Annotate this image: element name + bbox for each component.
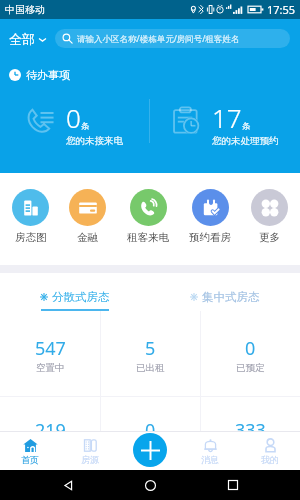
button[interactable]: 0 (0, 96, 149, 146)
staticText: 547 (35, 336, 66, 361)
staticText: 房态图 (15, 231, 47, 244)
staticText: 房源 (81, 454, 99, 465)
staticText: 已预定 (236, 362, 265, 374)
staticText: 空置中 (36, 362, 65, 374)
button[interactable]: 547 (0, 311, 100, 396)
staticText: 中国移动 (5, 3, 45, 16)
button[interactable]: 房源 (60, 432, 120, 470)
staticText: 已到期 (136, 444, 165, 456)
button[interactable]: Back (53, 470, 83, 500)
staticText: 已出租 (136, 362, 165, 374)
button[interactable]: 5 (101, 311, 200, 396)
staticText: 17:55 (267, 2, 296, 17)
button[interactable]: 我的 (240, 432, 300, 470)
staticText: 金融 (77, 231, 98, 244)
staticText: 首页 (21, 454, 39, 465)
button[interactable]: 0 (101, 397, 200, 475)
button[interactable]: 17 (150, 96, 300, 146)
staticText: 219 (35, 418, 66, 443)
staticText: 集中式房态 (202, 290, 260, 304)
staticText: 您的未接来电 (66, 135, 123, 146)
staticText: 请输入小区名称/楼栋单元/房间号/租客姓名 (77, 33, 240, 45)
staticText: 全部 (9, 31, 35, 47)
staticText: 您的未处理预约 (212, 135, 279, 146)
staticText: 17 (212, 100, 242, 135)
staticText: 预约看房 (189, 231, 231, 244)
button[interactable]: Home (135, 470, 165, 500)
staticText: 0 (145, 418, 156, 443)
button[interactable]: 更多 (251, 173, 288, 265)
staticText: 0 (66, 100, 81, 135)
staticText: 条 (242, 121, 251, 132)
button[interactable]: Add (133, 433, 167, 467)
button[interactable]: 全部 (7, 31, 49, 47)
staticText: 待出租 (36, 444, 65, 456)
button[interactable]: 预约看房 (189, 173, 231, 265)
button[interactable]: 333 (201, 397, 300, 475)
staticText: 更多 (259, 231, 280, 244)
button[interactable]: 首页 (0, 432, 60, 470)
button[interactable]: 0 (201, 311, 300, 396)
staticText: 分散式房态 (52, 290, 110, 304)
button[interactable]: 消息 (180, 432, 240, 470)
button[interactable]: 金融 (69, 173, 106, 265)
staticText: 条 (81, 121, 90, 132)
staticText: 消息 (201, 454, 219, 465)
staticText: 租客来电 (127, 231, 169, 244)
button[interactable]: 219 (0, 397, 100, 475)
staticText: 待办事项 (26, 68, 70, 82)
button[interactable]: 分散式房态 (0, 273, 150, 311)
staticText: 5 (145, 336, 156, 361)
staticText: 333 (235, 418, 266, 443)
button[interactable]: 房态图 (12, 173, 49, 265)
button[interactable]: 请输入小区名称/楼栋单元/房间号/租客姓名 (55, 29, 290, 48)
button[interactable]: 租客来电 (127, 173, 169, 265)
button[interactable]: 集中式房态 (150, 273, 300, 311)
staticText: 0 (245, 336, 256, 361)
staticText: 我的 (261, 454, 279, 465)
button[interactable]: Recents (218, 470, 248, 500)
